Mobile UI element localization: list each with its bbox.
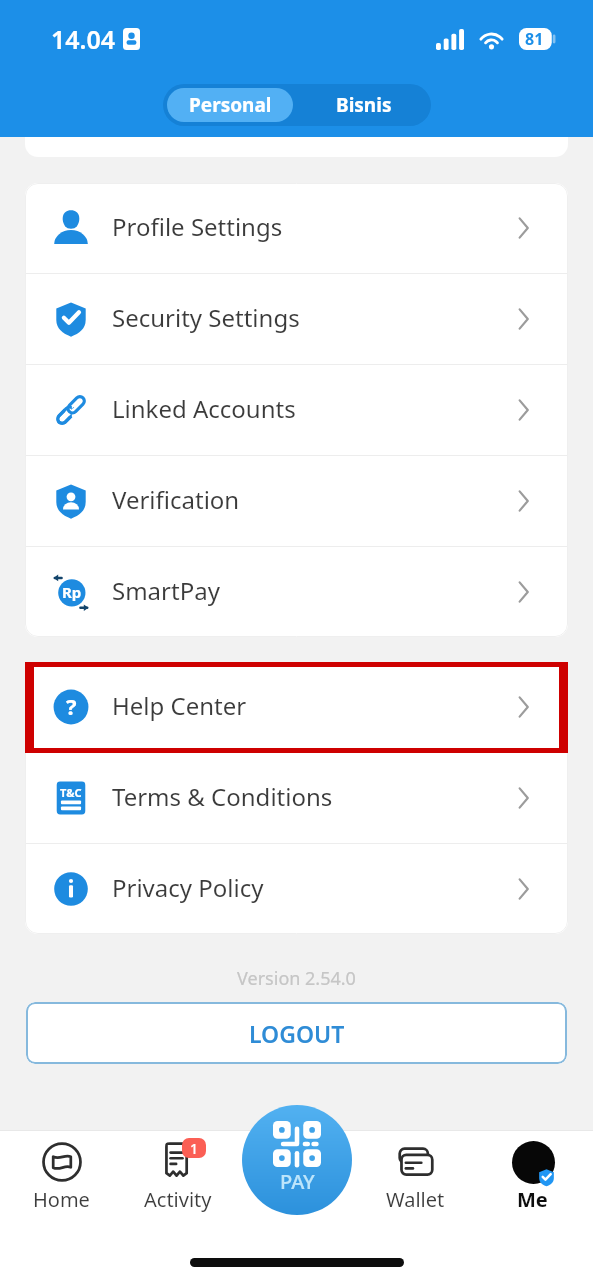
button[interactable]: Verification <box>25 456 568 546</box>
staticText: Security Settings <box>112 301 300 334</box>
staticText: 81 <box>525 28 544 50</box>
button[interactable]: Personal <box>167 88 293 122</box>
staticText: Me <box>517 1186 548 1213</box>
staticText: Rp <box>62 582 82 602</box>
staticText: SmartPay <box>112 574 220 607</box>
staticText: PAY <box>280 1168 315 1195</box>
staticText: LOGOUT <box>249 1018 345 1049</box>
button[interactable]: Rp <box>25 547 568 637</box>
button[interactable]: LOGOUT <box>26 1002 567 1064</box>
staticText: Terms & Conditions <box>112 780 333 813</box>
staticText: Personal <box>189 92 272 118</box>
button[interactable]: Bisnis <box>297 84 431 126</box>
staticText: Version 2.54.0 <box>0 966 593 991</box>
button[interactable]: Me <box>485 1136 580 1213</box>
button[interactable]: ? <box>25 662 568 752</box>
staticText: Privacy Policy <box>112 871 264 904</box>
staticText: Activity <box>144 1186 212 1213</box>
staticText: 1 <box>190 1139 199 1158</box>
button[interactable]: Linked Accounts <box>25 365 568 455</box>
button[interactable]: 1 <box>130 1136 225 1213</box>
button[interactable]: T&C <box>25 753 568 843</box>
button[interactable]: Profile Settings <box>25 183 568 273</box>
staticText: Bisnis <box>336 92 392 118</box>
staticText: Verification <box>112 483 240 516</box>
staticText: Linked Accounts <box>112 392 296 425</box>
staticText: Help Center <box>112 689 247 722</box>
staticText: Home <box>33 1186 90 1213</box>
button[interactable]: Pay with QR code <box>242 1105 352 1215</box>
button[interactable]: Privacy Policy <box>25 844 568 934</box>
staticText: Profile Settings <box>112 210 283 243</box>
staticText: T&C <box>60 785 82 800</box>
staticText: ? <box>66 691 77 721</box>
staticText: Wallet <box>386 1186 445 1213</box>
button[interactable]: Wallet <box>368 1136 463 1213</box>
button[interactable]: Home <box>14 1136 109 1213</box>
button[interactable]: Security Settings <box>25 274 568 364</box>
staticText: 14.04 <box>51 22 116 56</box>
